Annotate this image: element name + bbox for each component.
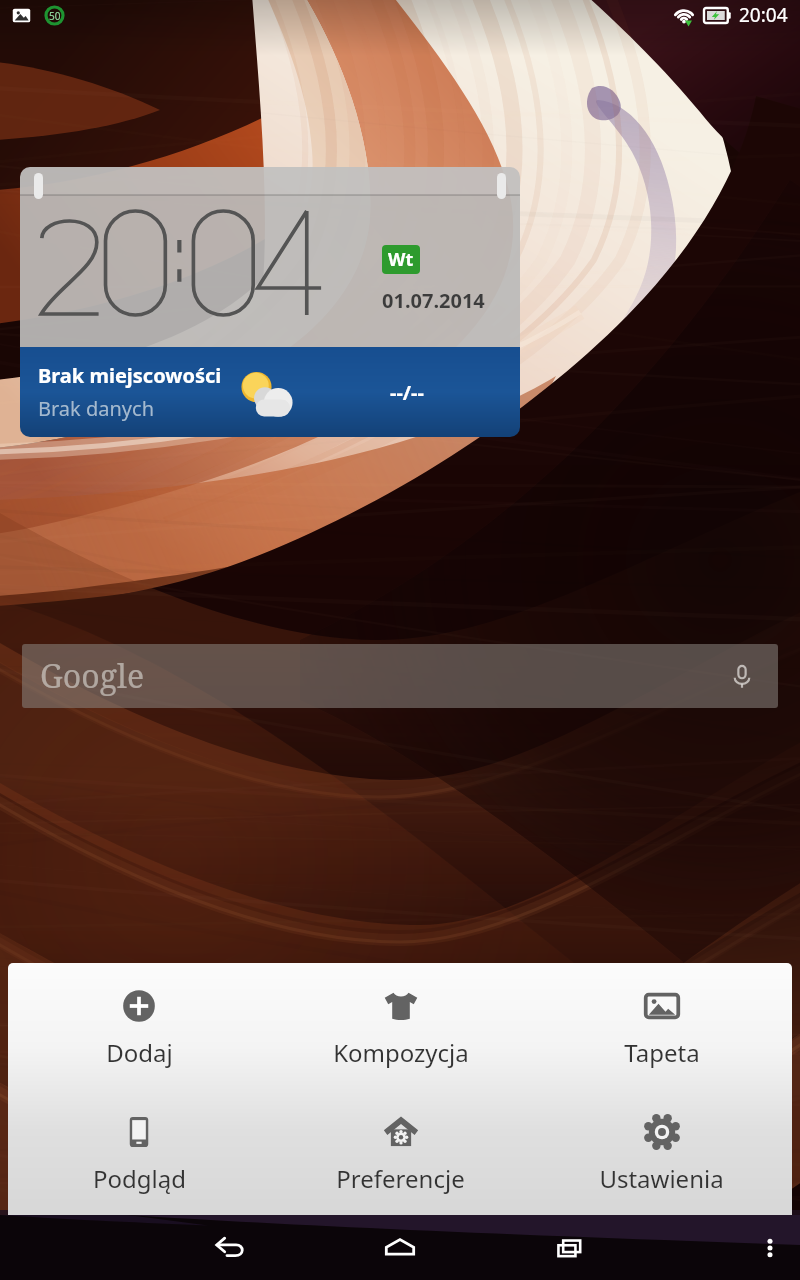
staticText: Brak miejscowości [38,362,222,389]
button[interactable]: Recent apps [540,1218,600,1278]
staticText: Ustawienia [599,1162,724,1195]
button[interactable]: Preferencje [270,1089,531,1215]
button[interactable]: Dodaj [8,963,270,1089]
staticText: 01.07.2014 [382,287,485,314]
staticText: Tapeta [624,1036,700,1069]
button[interactable]: Tapeta [531,963,792,1089]
button[interactable]: Google Search [22,644,778,708]
staticText: Preferencje [336,1162,465,1195]
staticText: Wt [388,247,414,272]
button[interactable]: Ustawienia [531,1089,792,1215]
staticText: Dodaj [106,1036,173,1069]
staticText: 20:04 [739,2,788,28]
button[interactable]: Back [200,1218,260,1278]
staticText: Google [40,654,145,698]
staticText: Podgląd [93,1162,186,1195]
staticText: 50 [49,9,61,23]
button[interactable]: Clock and weather widget [20,167,520,437]
staticText: Kompozycja [333,1036,469,1069]
staticText: Brak danych [38,395,154,422]
button[interactable]: Podgląd [8,1089,270,1215]
button[interactable]: Kompozycja [270,963,531,1089]
button[interactable]: Home [370,1218,430,1278]
button[interactable]: More options [748,1226,792,1270]
staticText: --/-- [390,379,424,406]
